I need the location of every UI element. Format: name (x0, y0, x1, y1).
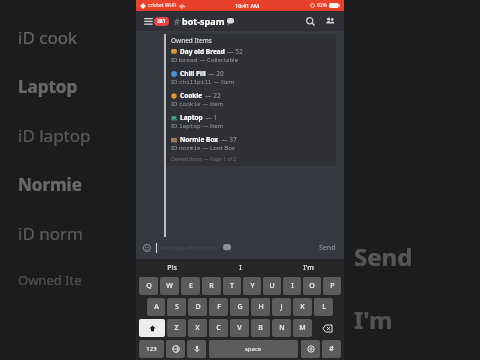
staticText: bread (179, 56, 198, 64)
button[interactable]: T (223, 277, 241, 295)
button[interactable]: Shift (139, 319, 165, 337)
button[interactable]: M (293, 319, 312, 337)
button[interactable]: X (188, 319, 207, 337)
button[interactable]: G (230, 298, 249, 316)
staticText: space (245, 345, 262, 353)
staticText: D (195, 302, 201, 312)
staticText: Normie (18, 173, 82, 196)
staticText: Pls (167, 263, 177, 273)
button[interactable]: W (160, 277, 179, 295)
button[interactable]: E (181, 277, 200, 295)
staticText: — Item (212, 78, 235, 86)
staticText: # (329, 344, 334, 354)
staticText: G (237, 302, 243, 312)
staticText: I'm (354, 303, 393, 336)
button[interactable]: # (322, 340, 341, 358)
staticText: O (309, 281, 315, 291)
button[interactable]: D (188, 298, 207, 316)
staticText: Send (354, 240, 413, 273)
button[interactable]: S (167, 298, 186, 316)
staticText: — Item (201, 122, 224, 130)
staticText: F (217, 302, 221, 312)
staticText: — 20 (208, 69, 224, 78)
staticText: Normie Box (180, 135, 219, 144)
button[interactable]: I'm (274, 261, 342, 275)
button[interactable]: F (209, 298, 228, 316)
staticText: H (258, 302, 264, 312)
button[interactable]: I (206, 261, 274, 275)
staticText: L (322, 302, 326, 312)
button[interactable]: U (263, 277, 281, 295)
staticText: 10:41 AM (235, 2, 260, 9)
staticText: Y (250, 281, 255, 291)
staticText: laptop (179, 122, 201, 130)
button[interactable]: Members (322, 13, 338, 29)
staticText: ID (171, 78, 179, 86)
staticText: X (195, 323, 200, 333)
button[interactable]: Z (167, 319, 186, 337)
button[interactable]: O (303, 277, 321, 295)
staticText: Cookie (180, 91, 203, 100)
staticText: I (239, 263, 242, 273)
staticText: iD norm (18, 222, 83, 245)
staticText: 281 (157, 18, 166, 25)
button[interactable]: Search (302, 13, 318, 29)
button[interactable]: space (209, 340, 298, 358)
staticText: ID (171, 144, 179, 152)
button[interactable]: Backspace (314, 319, 341, 337)
button[interactable]: V (230, 319, 249, 337)
staticText: R (209, 281, 214, 291)
staticText: Owned Items (171, 36, 212, 45)
button[interactable]: H (251, 298, 270, 316)
staticText: M (299, 323, 306, 333)
staticText: J (280, 302, 283, 312)
staticText: Z (174, 323, 179, 333)
staticText: - (236, 16, 239, 26)
button[interactable]: N (272, 319, 291, 337)
staticText: V (237, 323, 242, 333)
staticText: C (216, 323, 221, 333)
staticText: K (300, 302, 305, 312)
button[interactable]: A (147, 298, 165, 316)
button[interactable]: Send (316, 241, 339, 255)
staticText: ID (171, 122, 179, 130)
staticText: chillpill (179, 78, 212, 86)
staticText: Owned Ite (18, 271, 82, 289)
staticText: Message #bot-spam (160, 244, 218, 252)
button[interactable]: K (293, 298, 312, 316)
button[interactable]: C (209, 319, 228, 337)
button[interactable]: Q (139, 277, 158, 295)
staticText: # (174, 15, 180, 27)
button[interactable]: I (283, 277, 301, 295)
staticText: Laptop (180, 113, 203, 122)
staticText: S (175, 302, 179, 312)
button[interactable]: Emoji (141, 242, 153, 254)
button[interactable]: Pls (138, 261, 206, 275)
staticText: — Loot Box (201, 144, 235, 152)
staticText: B (258, 323, 263, 333)
button[interactable]: B (251, 319, 270, 337)
staticText: cricket Wi-Fi (148, 2, 177, 9)
button[interactable]: R (202, 277, 221, 295)
staticText: 123 (146, 345, 157, 353)
button[interactable]: Open channel list (142, 15, 171, 28)
button[interactable]: P (323, 277, 341, 295)
button[interactable]: J (272, 298, 291, 316)
staticText: — Collectable (198, 56, 239, 64)
staticText: E (189, 281, 193, 291)
staticText: Laptop (18, 75, 78, 98)
button[interactable]: At sign (301, 340, 320, 358)
staticText: cookie (179, 100, 201, 108)
staticText: Owned Items — Page 1 of 2 (171, 156, 237, 163)
staticText: Send (319, 243, 336, 253)
button[interactable]: Y (243, 277, 261, 295)
staticText: normie (179, 144, 201, 152)
button[interactable]: 123 (139, 340, 164, 358)
staticText: 92% (317, 2, 327, 9)
button[interactable]: L (314, 298, 333, 316)
button[interactable]: Change language (166, 340, 185, 358)
staticText: — 37 (221, 135, 237, 144)
staticText: I (291, 281, 294, 291)
staticText: P (330, 281, 335, 291)
button[interactable]: Voice input (187, 340, 206, 358)
